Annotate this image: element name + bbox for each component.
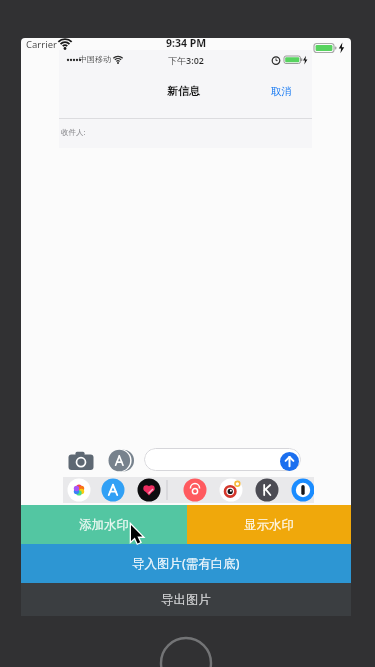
button[interactable]: 取消 [266,83,296,99]
button[interactable] [67,451,95,471]
button[interactable] [280,452,299,471]
staticText: 9:34 PM [166,36,207,50]
staticText: 新信息 [167,84,200,98]
staticText: 下午3:02 [168,54,204,66]
button[interactable]: 导入图片(需有白底) [21,544,351,583]
staticText: 导出图片 [161,592,211,608]
button[interactable]: 显示水印 [187,505,351,544]
staticText: 中国移动 [79,54,111,64]
staticText: 添加水印 [79,517,129,533]
button[interactable] [107,449,135,472]
staticText: 显示水印 [244,517,294,533]
staticText: 收件人: [61,127,86,137]
staticText: 取消 [271,85,292,98]
staticText: Carrier [26,38,57,51]
button[interactable]: 添加水印 [21,505,187,544]
button[interactable]: 导出图片 [21,583,351,616]
staticText: 导入图片(需有白底) [132,555,240,572]
